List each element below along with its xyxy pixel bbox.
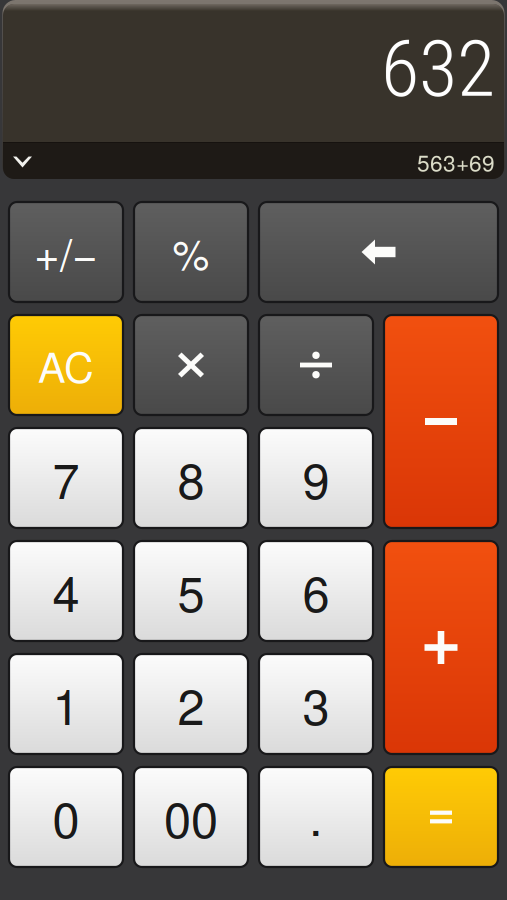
staticText: 8 [177,443,204,513]
button[interactable]: 2 [134,654,248,754]
staticText: 7 [52,443,79,513]
staticText: 5 [177,556,204,626]
staticText: % [172,222,209,282]
staticText: 2 [177,669,204,739]
staticText: 632 [381,23,495,115]
button[interactable]: +/− [9,202,123,302]
staticText: 00 [164,782,218,852]
staticText: AC [38,335,94,395]
staticText: . [309,780,323,850]
button[interactable]: 3 [259,654,373,754]
button[interactable]: AC [9,315,123,415]
button[interactable]: 1 [9,654,123,754]
button[interactable]: 00 [134,767,248,867]
staticText: 0 [52,782,79,852]
staticText: 9 [302,443,329,513]
button[interactable]: 6 [259,541,373,641]
button[interactable]: 9 [259,428,373,528]
staticText: 3 [302,669,329,739]
button[interactable]: 8 [134,428,248,528]
button[interactable]: 4 [9,541,123,641]
button[interactable]: 5 [134,541,248,641]
button[interactable]: Backspace [259,202,498,302]
button[interactable]: 7 [9,428,123,528]
button[interactable]: Plus [384,541,498,754]
staticText: +/− [34,220,98,283]
button[interactable]: Equals [384,767,498,867]
staticText: 1 [52,669,79,739]
button[interactable]: % [134,202,248,302]
staticText: 6 [302,556,329,626]
staticText: 4 [52,556,79,626]
button[interactable]: Minus [384,315,498,528]
button[interactable]: . [259,767,373,867]
button[interactable]: Divide [259,315,373,415]
staticText: 563+69 [417,146,495,178]
button[interactable]: Multiply [134,315,248,415]
button[interactable]: 0 [9,767,123,867]
